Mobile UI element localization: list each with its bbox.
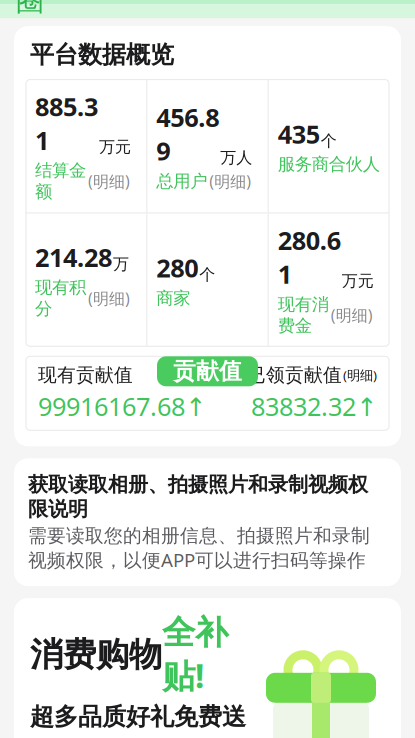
button[interactable]: 消费购物 bbox=[14, 598, 401, 738]
staticText: (明细) bbox=[88, 170, 130, 192]
button[interactable]: 280 bbox=[147, 241, 268, 319]
staticText: 435 bbox=[278, 117, 320, 151]
button[interactable]: 214.28 bbox=[26, 230, 146, 329]
staticText: 99916167.68↑ bbox=[38, 389, 206, 423]
staticText: 83832.32↑ bbox=[251, 389, 377, 423]
staticText: (明细) bbox=[88, 288, 130, 309]
staticText: 需要读取您的相册信息、拍摄照片和录制视频权限，以便APP可以进行扫码等操作 bbox=[28, 524, 370, 572]
staticText: (明细) bbox=[209, 170, 251, 192]
staticText: 个 bbox=[199, 265, 215, 285]
button[interactable]: 435 bbox=[269, 107, 389, 185]
staticText: 商家 bbox=[156, 288, 190, 309]
staticText: 服务商合伙人 bbox=[278, 154, 380, 175]
button[interactable]: 885.31 bbox=[26, 80, 146, 212]
staticText: 已领贡献值 bbox=[247, 363, 342, 386]
staticText: 个 bbox=[321, 131, 337, 151]
staticText: (明细) bbox=[331, 304, 373, 326]
staticText: 万人 bbox=[220, 148, 252, 168]
staticText: 万 bbox=[113, 254, 129, 274]
button[interactable]: 280.61 bbox=[269, 213, 389, 346]
staticText: 总用户 bbox=[156, 170, 207, 192]
staticText: 万元 bbox=[342, 271, 374, 291]
staticText: 现有贡献值 bbox=[38, 363, 133, 386]
button[interactable]: 现有贡献值 bbox=[26, 351, 207, 435]
staticText: 456.89 bbox=[156, 100, 219, 167]
staticText: 全补贴! bbox=[162, 612, 228, 697]
staticText: 885.31 bbox=[35, 90, 98, 157]
staticText: 获取读取相册、拍摄照片和录制视频权限说明 bbox=[28, 472, 368, 521]
staticText: 贡献值 bbox=[173, 357, 242, 385]
staticText: 现有消费金 bbox=[278, 294, 329, 336]
staticText: 超多品质好礼免费送~ bbox=[30, 702, 246, 738]
staticText: 280.61 bbox=[278, 223, 341, 291]
button[interactable]: 已领贡献值 bbox=[207, 351, 389, 435]
staticText: 结算金额 bbox=[35, 160, 86, 202]
staticText: 平台数据概览 bbox=[30, 40, 174, 70]
button[interactable]: 456.89 bbox=[147, 90, 268, 202]
staticText: 万元 bbox=[99, 137, 131, 157]
staticText: (明细) bbox=[343, 366, 377, 384]
staticText: 消费购物 bbox=[30, 634, 162, 675]
staticText: 280 bbox=[156, 251, 198, 284]
staticText: 现有积分 bbox=[35, 277, 86, 319]
staticText: 214.28 bbox=[35, 240, 112, 274]
staticText: 共建共享数据生态圈 bbox=[16, 0, 240, 18]
